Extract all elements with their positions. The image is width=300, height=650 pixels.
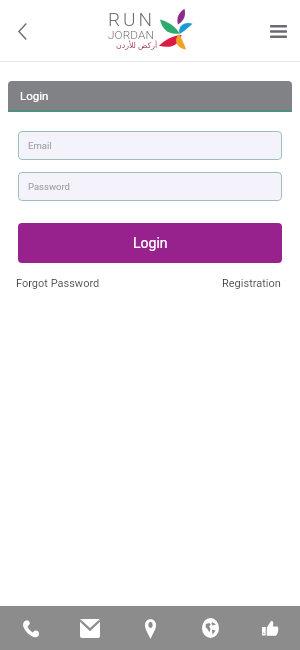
button[interactable]: Website <box>180 606 240 650</box>
button[interactable]: Menu <box>256 9 300 53</box>
staticText: Email <box>28 140 52 151</box>
staticText: Registration <box>222 277 281 290</box>
button[interactable]: Login <box>8 81 292 112</box>
staticText: Login <box>133 235 168 251</box>
staticText: Password <box>28 181 70 192</box>
button[interactable]: Login <box>18 223 282 263</box>
staticText: Login <box>20 89 49 102</box>
button[interactable]: Password <box>18 172 282 201</box>
button[interactable]: Email <box>60 606 120 650</box>
button[interactable]: Forgot Password <box>16 277 100 290</box>
button[interactable]: Call <box>0 606 60 650</box>
staticText: Forgot Password <box>16 277 100 290</box>
button[interactable]: Email <box>18 131 282 160</box>
staticText: JORDAN <box>108 28 154 42</box>
staticText: RUN <box>108 8 156 30</box>
button[interactable]: Back <box>0 9 44 53</box>
button[interactable]: Registration <box>222 277 281 290</box>
button[interactable]: Like <box>240 606 300 650</box>
staticText: أركض للأردن <box>116 40 158 51</box>
button[interactable]: Location <box>120 606 180 650</box>
